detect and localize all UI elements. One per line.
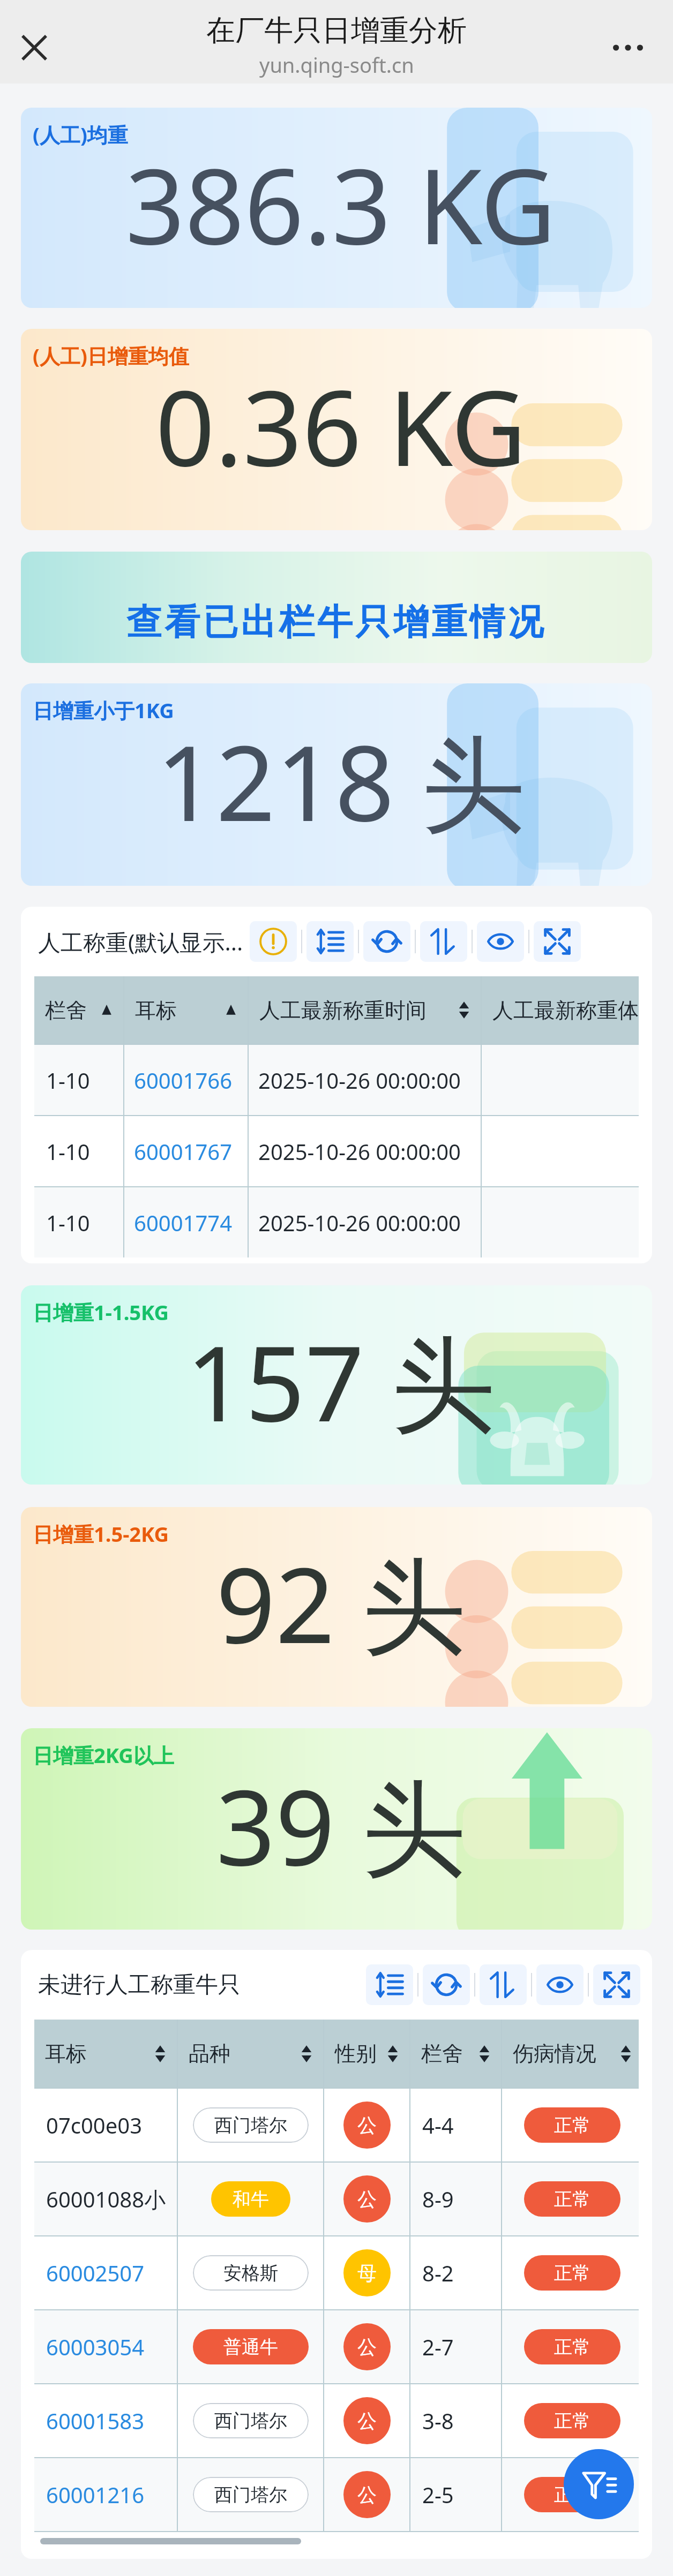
button[interactable]: 正常 [524,2181,620,2217]
staticText: 60001088小 [46,2185,166,2214]
staticText: 安格斯 [223,2262,278,2285]
staticText: (人工)日增重均值 [33,342,189,370]
staticText: 正常 [554,2483,590,2506]
staticText: 普通牛 [223,2336,278,2359]
staticText: 157 头 [186,1310,496,1452]
staticText: 公 [357,2113,377,2137]
button[interactable]: Fullscreen [534,921,581,962]
staticText: 3-8 [422,2406,454,2435]
button[interactable]: Show columns [477,921,524,962]
staticText: 1-10 [46,1208,90,1237]
button[interactable]: 60001583 [46,2384,177,2457]
staticText: 人工最新称重时间 [259,997,427,1023]
button[interactable]: 60001088小 [46,2163,177,2235]
button[interactable]: 正常 [524,2477,620,2512]
staticText: 伤病情况 [513,2040,596,2067]
button[interactable]: 耳标 [34,2020,177,2088]
button[interactable]: 耳标 [124,976,248,1044]
button[interactable]: More options [601,21,655,74]
button[interactable]: 60002507 [46,2236,177,2309]
button[interactable]: 栏舍 [410,2020,501,2088]
button[interactable]: 西门塔尔 [193,2107,309,2143]
button[interactable]: Close [8,21,61,74]
staticText: 耳标 [45,2040,87,2067]
staticText: 2025-10-26 00:00:00 [258,1137,461,1166]
button[interactable]: 安格斯 [193,2255,309,2291]
staticText: 60001583 [46,2406,145,2435]
staticText: 在厂牛只日增重分析 [206,12,467,49]
button[interactable]: Sort [366,1964,413,2005]
staticText: 日增重小于1KG [33,696,174,724]
button[interactable]: 查看已出栏牛只增重情况 [21,552,652,663]
button[interactable]: 60001767 [134,1116,248,1186]
button[interactable]: 母 [343,2249,391,2296]
button[interactable]: 60001766 [134,1045,248,1115]
staticText: 07c00e03 [46,2111,143,2140]
button[interactable]: 正常 [524,2255,620,2291]
staticText: 39 头 [216,1754,466,1896]
button[interactable]: 公 [343,2102,391,2149]
button[interactable]: 西门塔尔 [193,2403,309,2438]
button[interactable]: 公 [343,2397,391,2444]
button[interactable]: Refresh [423,1964,470,2005]
button[interactable]: 正常 [524,2403,620,2438]
button[interactable]: 普通牛 [193,2329,309,2364]
button[interactable]: 正常 [524,2107,620,2143]
staticText: 2025-10-26 00:00:00 [258,1208,461,1237]
button[interactable]: 日增重1.5-2KG [21,1507,652,1707]
button[interactable]: Show columns [536,1964,584,2005]
staticText: 日增重1-1.5KG [33,1298,169,1326]
button[interactable]: 性别 [324,2020,409,2088]
button[interactable]: 60001216 [46,2458,177,2531]
button[interactable]: 正常 [524,2329,620,2364]
button[interactable]: 07c00e03 [46,2089,177,2161]
button[interactable]: Sort [306,921,354,962]
staticText: 日增重2KG以上 [33,1741,174,1769]
staticText: 公 [357,2483,377,2507]
staticText: 92 头 [216,1532,466,1674]
button[interactable]: 日增重1-1.5KG [21,1285,652,1485]
staticText: 人工称重(默认显示... [38,927,243,957]
staticText: 8-9 [422,2185,454,2213]
button[interactable]: Fullscreen [593,1964,640,2005]
staticText: 60001767 [134,1137,233,1166]
button[interactable]: 公 [343,2323,391,2370]
staticText: 1-10 [46,1137,90,1166]
staticText: yun.qing-soft.cn [259,51,414,79]
button[interactable]: 和牛 [211,2181,290,2217]
staticText: 386.3 KG [125,133,556,275]
button[interactable]: Refresh [363,921,410,962]
staticText: 公 [357,2187,377,2211]
staticText: 60001766 [134,1066,233,1095]
button[interactable]: 栏舍 [34,976,123,1044]
staticText: 2025-10-26 00:00:00 [258,1066,461,1095]
button[interactable]: Filter [564,2449,634,2519]
button[interactable]: 人工最新称重时间 [249,976,481,1044]
button[interactable]: 伤病情况 [502,2020,639,2088]
button[interactable]: (人工)均重 [21,108,652,308]
button[interactable]: 日增重小于1KG [21,683,652,886]
staticText: 耳标 [135,997,177,1023]
button[interactable]: Warning [250,921,297,962]
staticText: 公 [357,2409,377,2433]
staticText: 60001216 [46,2480,145,2509]
staticText: 西门塔尔 [214,2114,287,2137]
button[interactable]: 公 [343,2175,391,2223]
button[interactable]: 人工最新称重体重 [482,976,639,1044]
staticText: 8-2 [422,2258,454,2287]
staticText: 60003054 [46,2332,145,2361]
button[interactable]: Order [420,921,467,962]
button[interactable]: Order [480,1964,527,2005]
staticText: 品种 [189,2040,230,2067]
staticText: 查看已出栏牛只增重情况 [126,600,547,644]
button[interactable]: 日增重2KG以上 [21,1728,652,1930]
staticText: 母 [357,2261,377,2285]
button[interactable]: (人工)日增重均值 [21,329,652,530]
button[interactable]: 品种 [178,2020,323,2088]
button[interactable]: 西门塔尔 [193,2477,309,2512]
button[interactable]: 60003054 [46,2310,177,2383]
button[interactable]: 公 [343,2471,391,2518]
staticText: 正常 [554,2188,590,2211]
button[interactable]: 60001774 [134,1187,248,1257]
staticText: 2-5 [422,2480,454,2509]
